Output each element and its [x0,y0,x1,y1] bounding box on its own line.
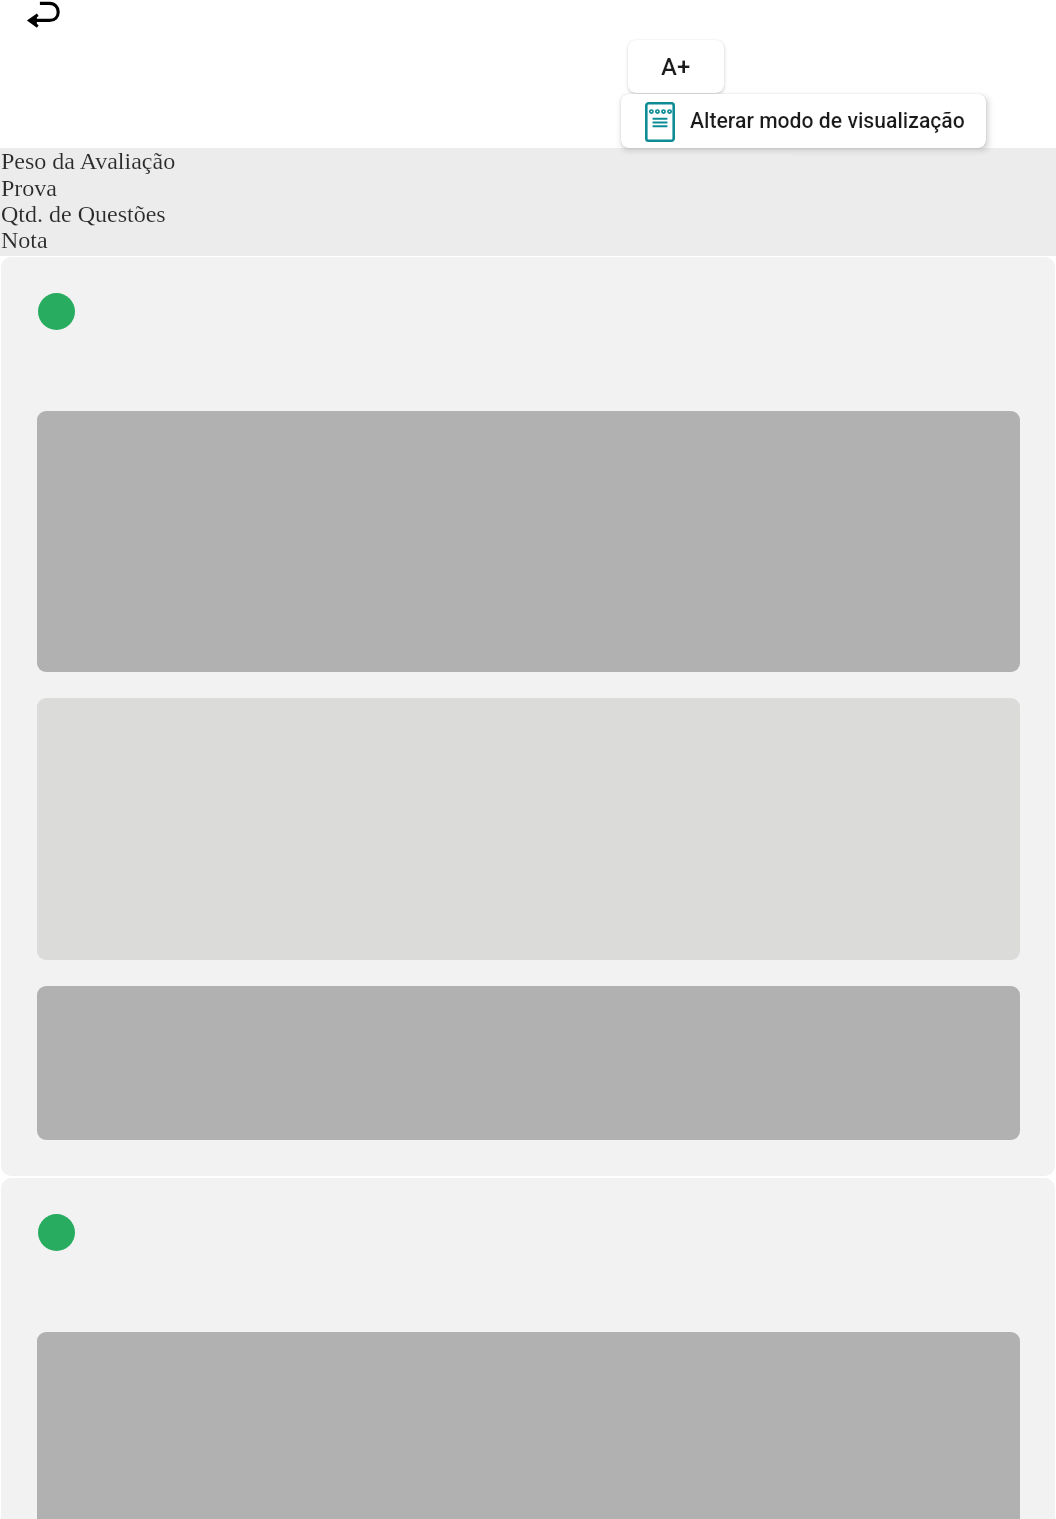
staticText: A+ [661,53,691,81]
button[interactable]: A+ [628,40,724,93]
button[interactable] [1,1178,1055,1519]
button[interactable]: Voltar [8,0,78,56]
staticText: Peso da Avaliação Prova Qtd. de Questões… [1,148,176,253]
button[interactable]: Alterar modo de visualização [621,94,986,148]
staticText: Alterar modo de visualização [690,108,965,133]
button[interactable] [1,257,1055,1176]
